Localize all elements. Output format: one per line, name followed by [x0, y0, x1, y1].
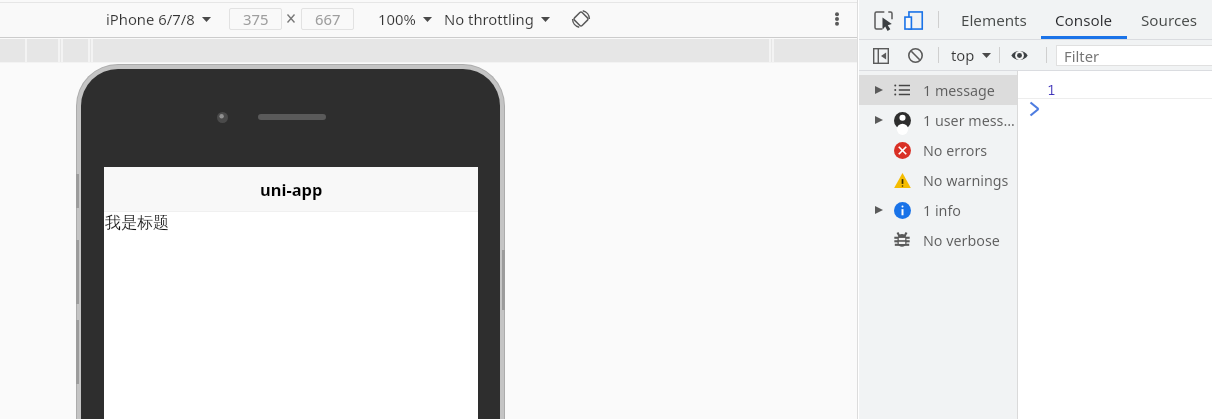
button[interactable]: top	[947, 44, 995, 66]
staticText: Console	[1055, 10, 1113, 31]
button[interactable]: Show console sidebar	[870, 45, 891, 66]
button[interactable]: More options	[824, 6, 849, 31]
staticText: 100%	[378, 9, 416, 29]
button[interactable]: 1 info	[859, 195, 1017, 225]
staticText: No warnings	[923, 171, 1009, 190]
button[interactable]: Sources	[1127, 0, 1212, 39]
staticText: Sources	[1141, 10, 1198, 31]
button[interactable]: 375	[229, 8, 282, 30]
staticText: 1 message	[923, 81, 995, 100]
button[interactable]: Elements	[947, 0, 1041, 39]
button[interactable]: Inspect element	[871, 8, 895, 32]
button[interactable]: Clear console	[905, 45, 926, 66]
button[interactable]: Toggle device toolbar	[901, 8, 925, 32]
staticText: Elements	[961, 10, 1027, 31]
staticText: 我是标题	[105, 213, 169, 233]
button[interactable]: iPhone 6/7/8	[101, 8, 216, 30]
staticText: uni-app	[260, 178, 323, 200]
staticText: 667	[315, 9, 341, 29]
button[interactable]: Rotate	[569, 7, 593, 31]
button[interactable]: Console settings	[1009, 45, 1030, 66]
button[interactable]: 667	[301, 8, 354, 30]
button[interactable]: No warnings	[859, 165, 1017, 195]
staticText: 375	[243, 9, 269, 29]
staticText: top	[951, 45, 975, 65]
button[interactable]: 100%	[373, 8, 437, 30]
staticText: 1 user mess…	[923, 111, 1015, 130]
button[interactable]: No throttling	[439, 8, 555, 30]
staticText: No verbose	[923, 231, 1000, 250]
staticText: Filter	[1064, 46, 1100, 66]
button[interactable]: No errors	[859, 135, 1017, 165]
button[interactable]: 1 user mess…	[859, 105, 1017, 135]
button[interactable]: Console	[1041, 0, 1127, 39]
staticText: No errors	[923, 141, 988, 160]
button[interactable]: No verbose	[859, 225, 1017, 255]
button[interactable]: 1 message	[859, 75, 1017, 105]
staticText: No throttling	[444, 9, 534, 29]
button[interactable]: Filter	[1056, 45, 1212, 66]
staticText: 1 info	[923, 201, 961, 220]
staticText: iPhone 6/7/8	[106, 9, 195, 29]
staticText: 1	[1047, 79, 1056, 99]
